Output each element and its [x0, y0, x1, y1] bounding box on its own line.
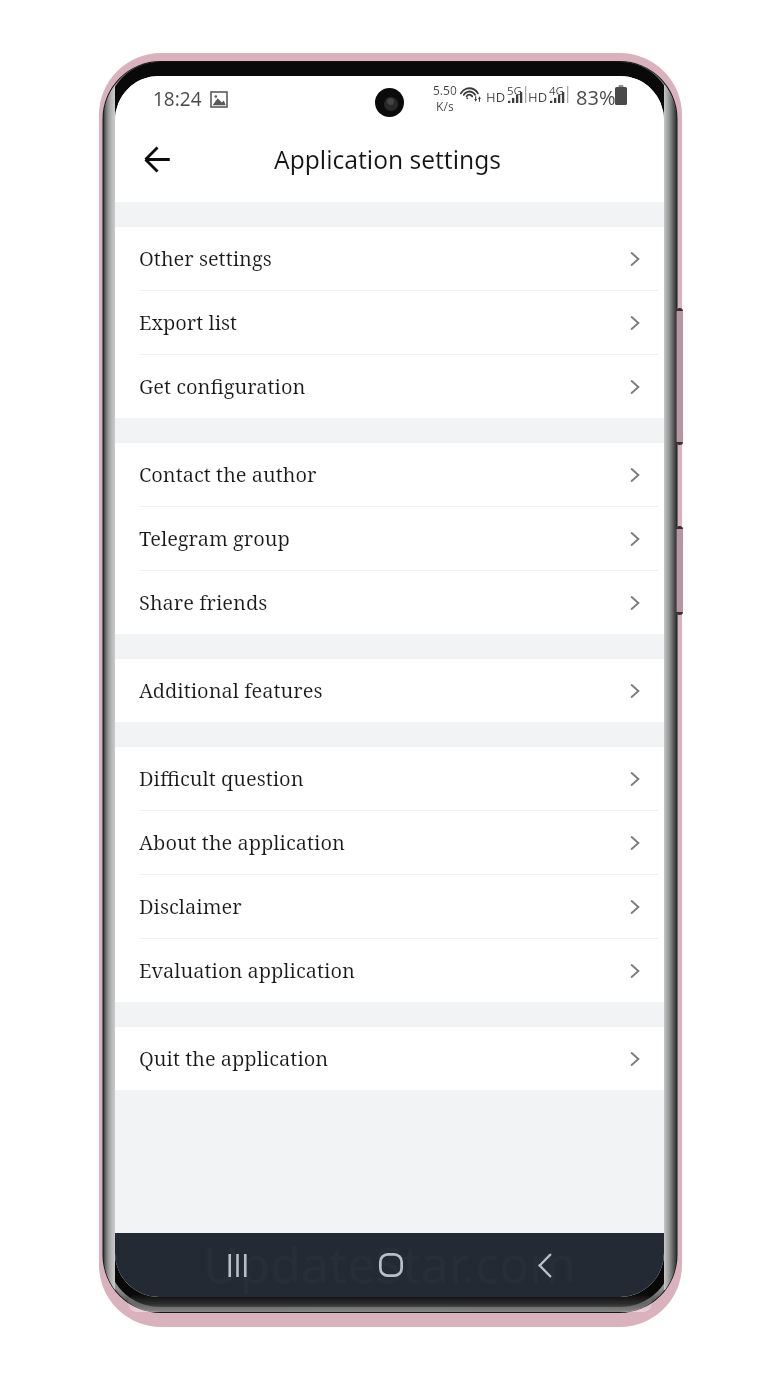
staticText: Evaluation application	[139, 957, 355, 984]
button[interactable]: Back	[522, 1243, 566, 1287]
button[interactable]: Additional features	[115, 659, 664, 722]
staticText: HD	[486, 88, 506, 106]
staticText: 83%	[576, 84, 616, 111]
staticText: Telegram group	[139, 525, 290, 552]
button[interactable]: Back	[134, 136, 180, 182]
staticText: Quit the application	[139, 1045, 329, 1072]
button[interactable]: Telegram group	[115, 507, 664, 570]
staticText: 5G	[507, 83, 522, 99]
staticText: Other settings	[139, 245, 272, 272]
staticText: Contact the author	[139, 461, 317, 488]
button[interactable]: Get configuration	[115, 355, 664, 418]
button[interactable]: Home	[369, 1243, 413, 1287]
staticText: 18:24	[153, 86, 202, 112]
button[interactable]: Recent apps	[215, 1243, 259, 1287]
staticText: Share friends	[139, 589, 268, 616]
button[interactable]: Quit the application	[115, 1027, 664, 1090]
button[interactable]: Disclaimer	[115, 875, 664, 938]
staticText: K/s	[436, 98, 454, 114]
staticText: HD	[528, 88, 548, 106]
staticText: UpdateStar.com	[203, 1230, 576, 1294]
staticText: Additional features	[139, 677, 323, 704]
button[interactable]: Contact the author	[115, 443, 664, 506]
button[interactable]: About the application	[115, 811, 664, 874]
staticText: Difficult question	[139, 765, 304, 792]
button[interactable]: Export list	[115, 291, 664, 354]
button[interactable]: Evaluation application	[115, 939, 664, 1002]
staticText: Get configuration	[139, 373, 306, 400]
staticText: Application settings	[274, 143, 501, 176]
staticText: Disclaimer	[139, 893, 242, 920]
button[interactable]: Other settings	[115, 227, 664, 290]
staticText: Export list	[139, 309, 238, 336]
staticText: 5.50	[433, 82, 457, 98]
button[interactable]: Difficult question	[115, 747, 664, 810]
staticText: About the application	[139, 829, 345, 856]
staticText: 4G	[549, 83, 564, 99]
button[interactable]: Share friends	[115, 571, 664, 634]
